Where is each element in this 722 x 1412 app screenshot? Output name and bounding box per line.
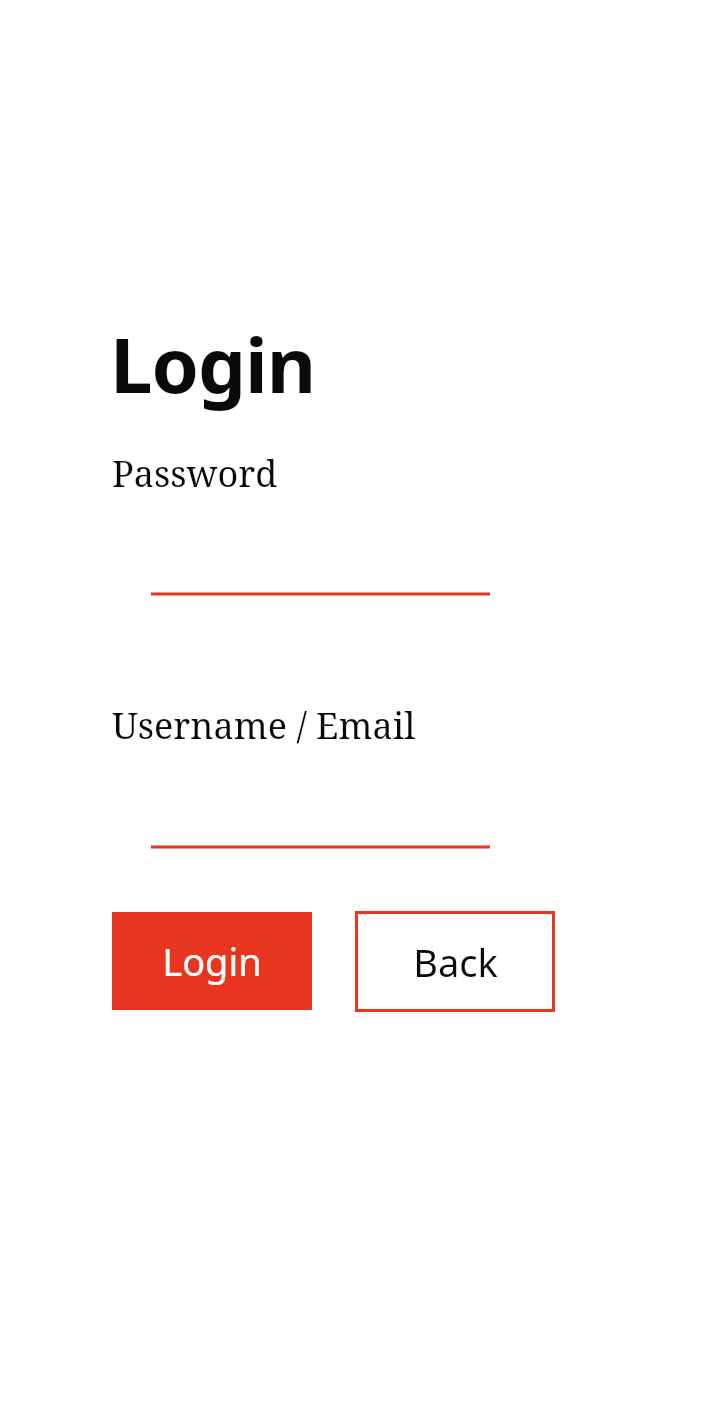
staticText: Password [112,449,278,498]
staticText: Username / Email [112,701,416,750]
button[interactable] [151,556,490,596]
staticText: Login [110,312,316,416]
button[interactable]: Back [355,911,555,1012]
button[interactable] [151,809,490,849]
staticText: Back [413,936,498,988]
button[interactable]: Login [112,912,312,1010]
staticText: Login [162,935,262,987]
